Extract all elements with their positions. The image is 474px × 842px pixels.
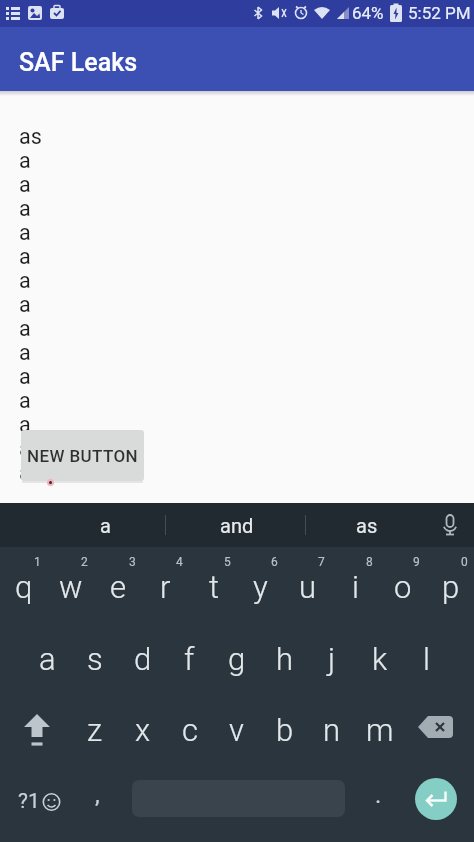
button[interactable]: o [379, 565, 426, 609]
button[interactable]: s [71, 637, 118, 681]
button[interactable]: q [0, 565, 47, 609]
button[interactable]: a [75, 503, 135, 547]
staticText: q [15, 569, 33, 605]
button[interactable]: c [166, 708, 213, 752]
staticText: j [328, 641, 336, 677]
button[interactable]: as [335, 503, 399, 547]
button[interactable]: y [237, 565, 284, 609]
button[interactable]: v [213, 708, 260, 752]
button[interactable] [413, 708, 459, 752]
staticText: 8 [366, 555, 373, 569]
button[interactable]: r [142, 565, 189, 609]
staticText: w [59, 569, 83, 605]
button[interactable]: a [24, 637, 71, 681]
button[interactable] [439, 514, 461, 536]
staticText: f [184, 641, 195, 677]
button[interactable]: p [427, 565, 474, 609]
staticText: SAF Leaks [19, 48, 138, 77]
staticText: n [323, 712, 341, 748]
staticText: v [229, 712, 244, 748]
staticText: m [366, 712, 394, 748]
staticText: 9 [413, 555, 420, 569]
button[interactable]: j [308, 637, 355, 681]
staticText: 4 [176, 555, 183, 569]
staticText: t [209, 569, 219, 605]
staticText: 7 [318, 555, 325, 569]
staticText: as [356, 514, 378, 537]
staticText: b [276, 712, 294, 748]
staticText: c [182, 712, 198, 748]
staticText: h [276, 641, 294, 677]
button[interactable]: ?1 [10, 779, 68, 823]
staticText: g [228, 641, 246, 677]
staticText: s [87, 641, 103, 677]
staticText: u [299, 569, 317, 605]
button[interactable]: e [95, 565, 142, 609]
button[interactable]: f [166, 637, 213, 681]
button[interactable]: d [119, 637, 166, 681]
button[interactable]: m [356, 708, 403, 752]
button[interactable]: and [200, 503, 274, 547]
button[interactable] [415, 778, 457, 820]
staticText: and [220, 514, 254, 537]
staticText: r [160, 569, 171, 605]
button[interactable]: n [308, 708, 355, 752]
button[interactable]: w [47, 565, 94, 609]
staticText: d [134, 641, 152, 677]
staticText: x [135, 712, 151, 748]
button[interactable]: b [261, 708, 308, 752]
button[interactable]: k [356, 637, 403, 681]
staticText: 1 [34, 555, 41, 569]
staticText: a [39, 641, 56, 677]
staticText: z [87, 712, 103, 748]
button[interactable]: t [190, 565, 237, 609]
staticText: 2 [81, 555, 88, 569]
staticText: NEW BUTTON [27, 446, 139, 466]
staticText: a [100, 514, 111, 537]
button[interactable]: NEW BUTTON [21, 430, 144, 481]
button[interactable]: l [403, 637, 450, 681]
button[interactable]: . [360, 779, 396, 823]
button[interactable]: x [119, 708, 166, 752]
staticText: 3 [129, 555, 136, 569]
staticText: y [253, 569, 268, 605]
staticText: 0 [461, 555, 468, 569]
staticText: p [442, 569, 460, 605]
staticText: i [352, 569, 359, 605]
staticText: 64% [352, 3, 384, 23]
staticText: 6 [271, 555, 278, 569]
button[interactable]: h [261, 637, 308, 681]
staticText: as a a a a a a a a a a a a a a [19, 124, 42, 485]
staticText: ?1 [18, 789, 40, 814]
button[interactable] [14, 708, 60, 752]
staticText: 5 [224, 555, 231, 569]
button[interactable]: , [80, 779, 114, 823]
staticText: , [95, 781, 100, 809]
staticText: l [423, 641, 430, 677]
button[interactable]: i [332, 565, 379, 609]
button[interactable]: g [213, 637, 260, 681]
staticText: . [375, 781, 382, 809]
button[interactable]: z [71, 708, 118, 752]
button[interactable]: u [284, 565, 331, 609]
staticText: 5:52 PM [408, 3, 471, 23]
staticText: e [110, 569, 127, 605]
staticText: k [372, 641, 388, 677]
staticText: o [394, 569, 412, 605]
